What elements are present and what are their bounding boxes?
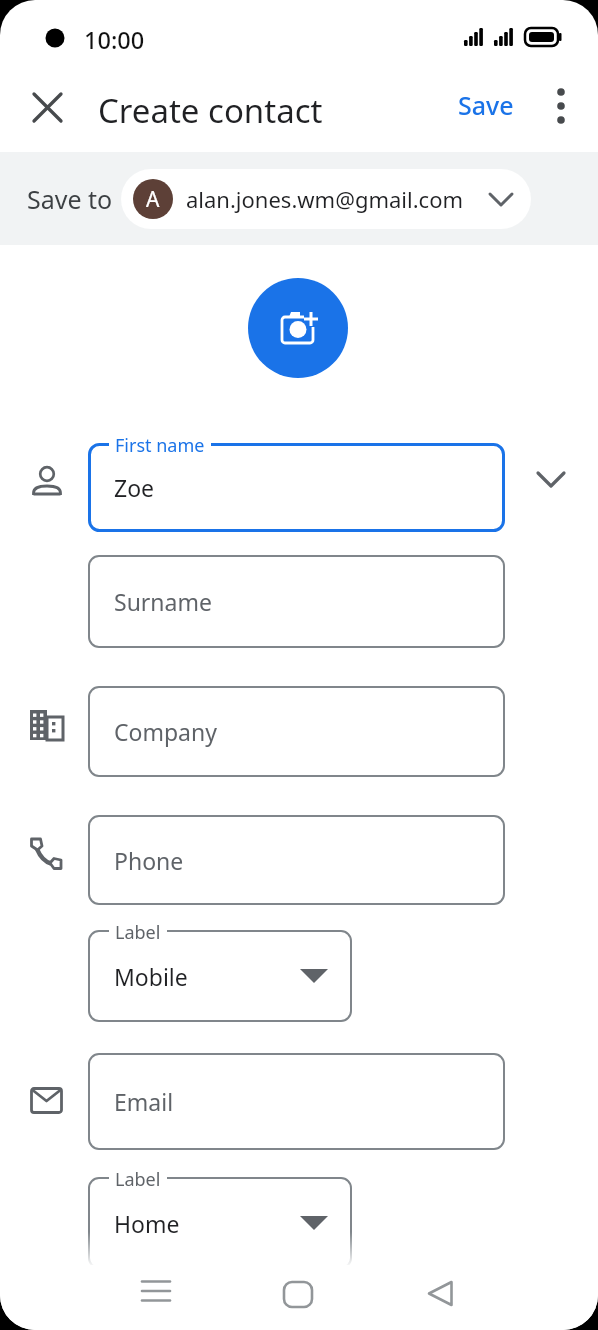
- staticText: Create contact: [98, 88, 323, 133]
- button[interactable]: [24, 84, 68, 128]
- staticText: alan.jones.wm@gmail.com: [186, 184, 464, 214]
- staticText: 10:00: [84, 24, 145, 56]
- button[interactable]: [530, 456, 574, 500]
- staticText: First name: [115, 433, 205, 458]
- staticText: Home: [114, 1208, 180, 1239]
- button[interactable]: [541, 84, 581, 128]
- staticText: Label: [115, 1167, 161, 1192]
- button[interactable]: Zoe: [88, 443, 505, 532]
- button[interactable]: Mobile: [88, 930, 352, 1022]
- staticText: Company: [114, 716, 217, 747]
- button[interactable]: [130, 1269, 182, 1313]
- button[interactable]: A: [121, 169, 531, 229]
- staticText: Surname: [114, 586, 212, 617]
- button[interactable]: Phone: [88, 815, 505, 905]
- button[interactable]: Surname: [88, 555, 505, 648]
- staticText: A: [146, 185, 160, 214]
- button[interactable]: Home: [88, 1177, 352, 1269]
- staticText: Mobile: [114, 961, 188, 992]
- button[interactable]: Company: [88, 686, 505, 777]
- button[interactable]: Save: [444, 80, 528, 130]
- button[interactable]: [416, 1270, 468, 1314]
- staticText: Save to: [27, 182, 113, 216]
- button[interactable]: Email: [88, 1053, 505, 1150]
- button[interactable]: [272, 1270, 324, 1314]
- staticText: Email: [114, 1086, 174, 1117]
- staticText: Phone: [114, 845, 184, 876]
- staticText: Label: [115, 920, 161, 945]
- staticText: Zoe: [114, 472, 155, 503]
- button[interactable]: [248, 278, 348, 378]
- staticText: Save: [458, 88, 514, 122]
